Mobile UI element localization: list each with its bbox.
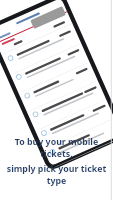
staticText: simply pick your ticket type — [6, 163, 107, 187]
button[interactable]: To buy your mobile tickets, — [6, 136, 107, 187]
staticText: To buy your mobile tickets, — [6, 136, 107, 160]
